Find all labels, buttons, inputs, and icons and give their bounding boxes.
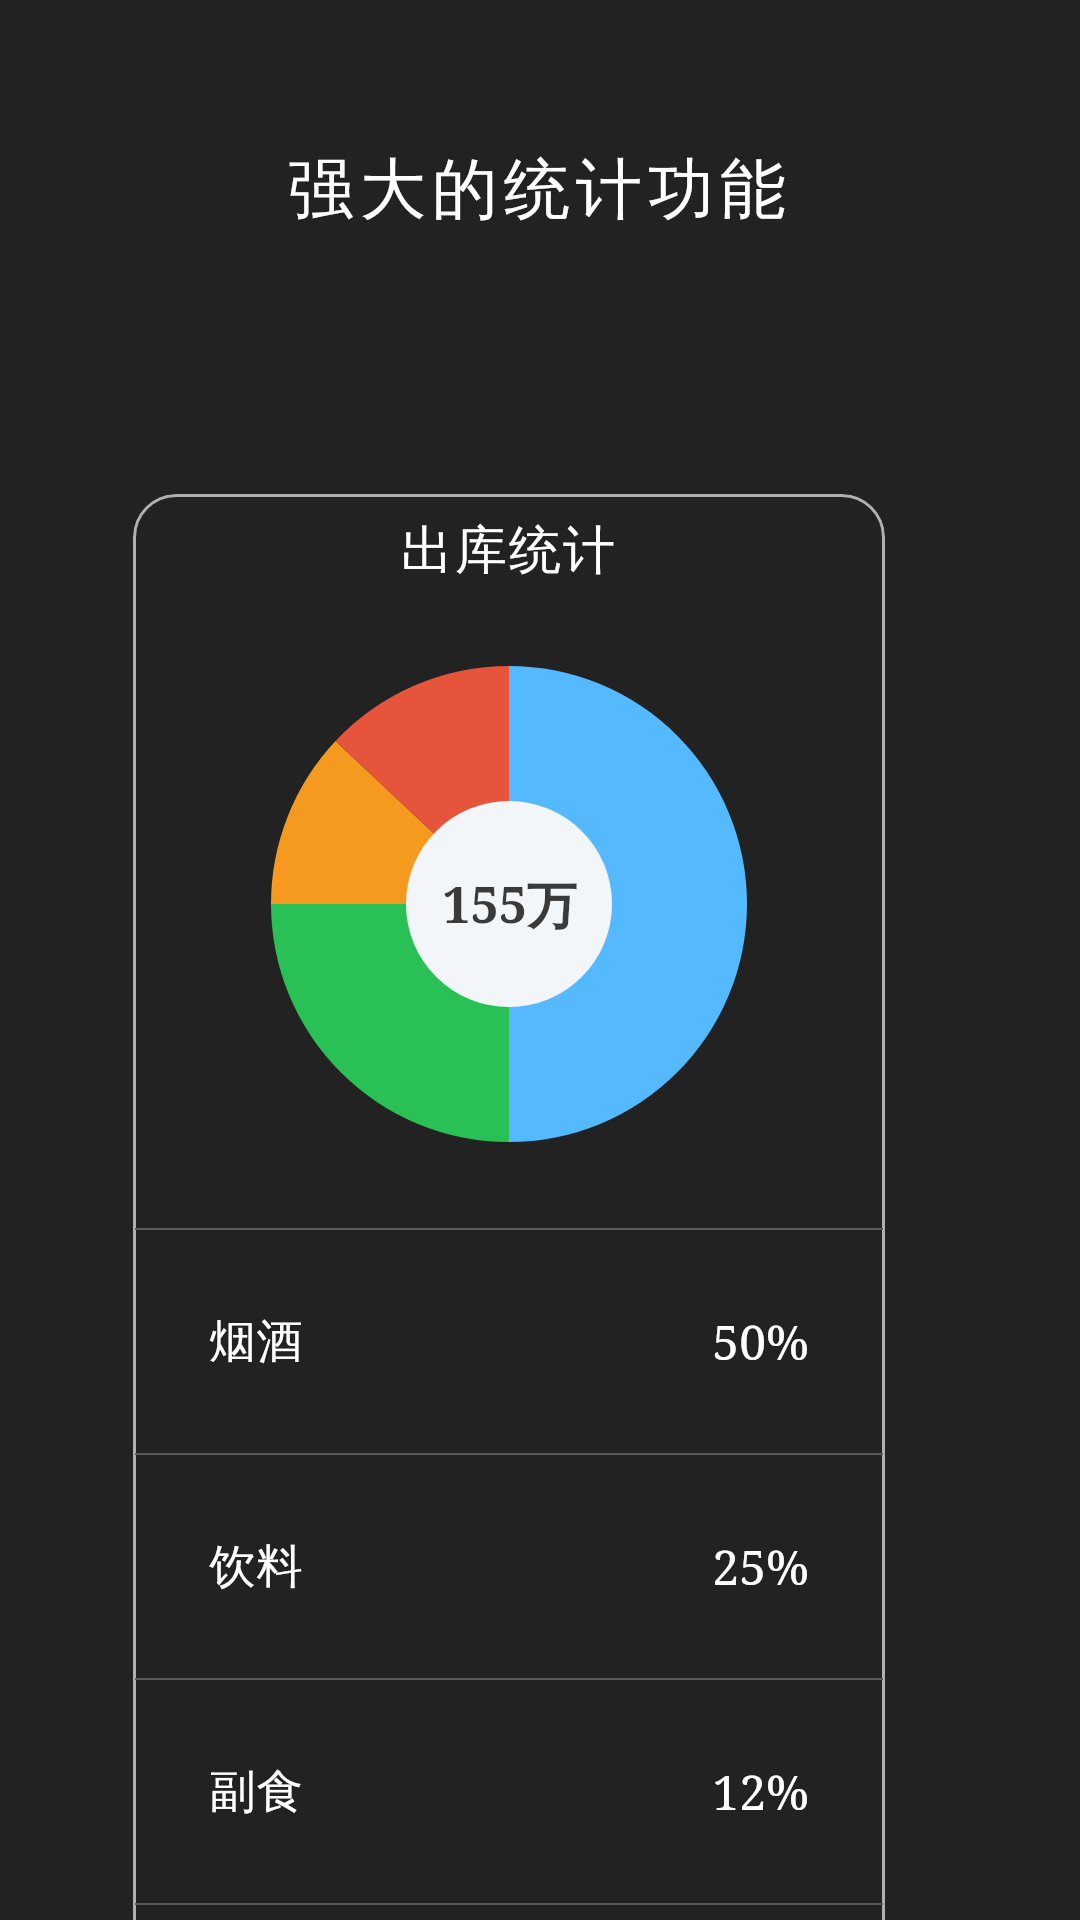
button[interactable]: 日化 bbox=[133, 1905, 885, 1920]
staticText: 155万 bbox=[442, 870, 577, 938]
staticText: 烟酒 bbox=[209, 1313, 303, 1371]
staticText: 强大的统计功能 bbox=[0, 148, 1080, 231]
staticText: 副食 bbox=[209, 1763, 303, 1821]
button[interactable]: 烟酒 bbox=[133, 1230, 885, 1453]
button[interactable]: 出库统计 bbox=[133, 494, 885, 1920]
staticText: 25% bbox=[712, 1534, 809, 1599]
staticText: 出库统计 bbox=[133, 518, 885, 584]
button[interactable]: 饮料 bbox=[133, 1455, 885, 1678]
staticText: 12% bbox=[712, 1759, 809, 1824]
button[interactable]: 副食 bbox=[133, 1680, 885, 1903]
staticText: 50% bbox=[712, 1309, 809, 1374]
staticText: 饮料 bbox=[209, 1538, 303, 1596]
button[interactable]: 出库统计饼图 bbox=[271, 666, 747, 1142]
